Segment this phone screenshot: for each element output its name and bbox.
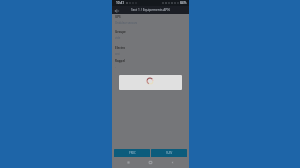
staticText: SUIV [166,151,173,155]
staticText: Rappel [115,59,126,63]
staticText: Onduleur secours [115,21,138,25]
button[interactable]: PREC [114,149,150,157]
button[interactable]: Recents [123,157,134,168]
staticText: UPS [115,15,121,19]
staticText: Sect 1 / Equipements APN [131,8,170,12]
staticText: 10:41 [116,1,125,5]
staticText: vide [115,36,121,40]
button[interactable]: SUIV [151,149,187,157]
staticText: Groupe [115,30,126,34]
staticText: ceci [115,52,120,56]
button[interactable]: Back [113,7,120,14]
staticText: Electro [115,46,126,50]
staticText: PREC [129,151,136,155]
button[interactable]: Home [145,157,156,168]
button[interactable]: Back [167,157,178,168]
staticText: 84% [180,1,187,5]
